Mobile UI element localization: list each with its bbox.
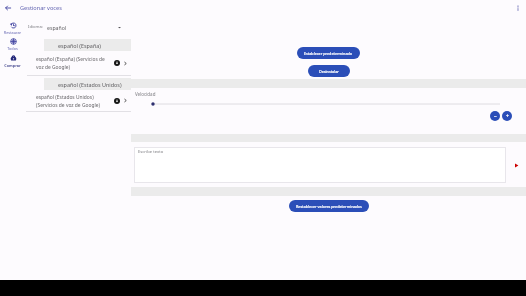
staticText: + <box>506 113 509 120</box>
staticText: español <box>47 24 67 31</box>
staticText: Idioma: <box>28 24 43 30</box>
staticText: Restablecer valores predeterminados <box>296 204 362 209</box>
button[interactable]: Reducir velocidad <box>490 111 500 121</box>
button[interactable]: Más opciones <box>510 0 526 16</box>
button[interactable]: Desinstalar <box>308 65 350 77</box>
button[interactable]: Restablecer valores predeterminados <box>289 200 369 212</box>
staticText: Restaurar <box>0 30 25 35</box>
staticText: Velocidad <box>135 91 156 97</box>
staticText: Gestionar voces <box>20 4 62 12</box>
staticText: Desinstalar <box>319 69 339 74</box>
button[interactable]: Establecer predeterminado <box>297 47 360 59</box>
staticText: español (Estados Unidos) <box>58 81 122 88</box>
staticText: español (España) (Servicios de voz de Go… <box>36 56 114 70</box>
staticText: español (España) <box>58 42 101 49</box>
button[interactable]: Aumentar velocidad <box>502 111 512 121</box>
staticText: − <box>494 113 497 120</box>
button[interactable]: Comprar <box>0 54 25 68</box>
button[interactable]: Escribe texto <box>134 147 506 183</box>
staticText: Todos <box>0 46 25 51</box>
button[interactable]: Todos <box>0 37 25 51</box>
button[interactable]: Restaurar <box>0 21 25 35</box>
button[interactable]: español (España) (Servicios de voz de Go… <box>25 51 131 75</box>
staticText: Comprar <box>0 63 25 68</box>
button[interactable]: Atrás <box>0 0 16 16</box>
staticText: español (Estados Unidos) (Servicios de v… <box>36 94 114 108</box>
button[interactable]: español (Estados Unidos) (Servicios de v… <box>25 90 131 111</box>
staticText: Escribe texto <box>138 149 164 155</box>
staticText: Establecer predeterminado <box>304 51 353 56</box>
button[interactable]: Reproducir <box>506 158 526 172</box>
